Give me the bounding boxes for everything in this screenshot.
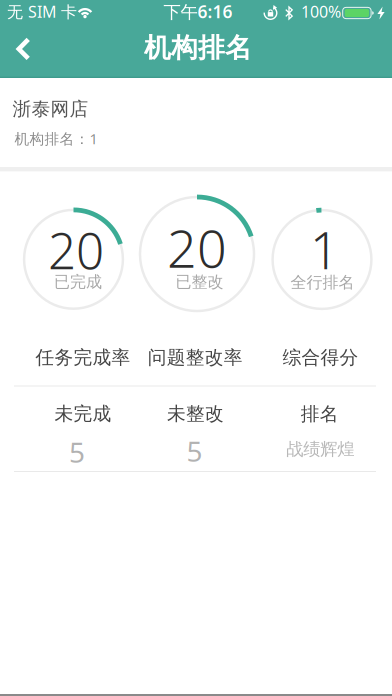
staticText: 5 (69, 433, 85, 471)
staticText: 1 (310, 216, 339, 283)
staticText: 未整改 (167, 402, 224, 425)
staticText: 20 (48, 217, 104, 283)
staticText: 任务完成率 (35, 346, 130, 369)
staticText: 机构排名：1 (14, 129, 97, 148)
staticText: 已整改 (175, 272, 223, 292)
staticText: 机构排名 (144, 31, 252, 64)
staticText: 浙泰网店 (12, 97, 88, 120)
staticText: 100% (301, 1, 341, 22)
staticText: 已完成 (54, 272, 102, 292)
staticText: 20 (167, 213, 227, 282)
staticText: 综合得分 (282, 346, 358, 369)
staticText: 5 (186, 432, 202, 470)
staticText: 战绩辉煌 (286, 439, 354, 460)
staticText: 无 SIM 卡 (7, 1, 77, 22)
staticText: 未完成 (54, 402, 111, 425)
staticText: 排名 (301, 403, 339, 425)
staticText: 下午6:16 (163, 0, 232, 23)
staticText: 全行排名 (290, 273, 354, 292)
staticText: 问题整改率 (148, 346, 243, 369)
button[interactable]: Back (0, 0, 48, 70)
